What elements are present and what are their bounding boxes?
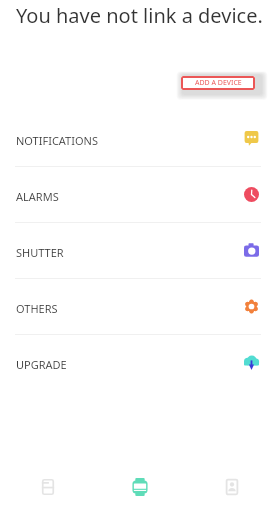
button[interactable]: OTHERS <box>0 280 276 336</box>
staticText: NOTIFICATIONS <box>16 133 98 148</box>
button[interactable]: Records <box>2 463 94 511</box>
staticText: UPGRADE <box>16 357 67 372</box>
button[interactable]: UPGRADE <box>0 336 276 392</box>
button[interactable]: ADD A DEVICE <box>181 76 255 90</box>
button[interactable]: SHUTTER <box>0 224 276 280</box>
button[interactable]: Device <box>94 463 186 511</box>
staticText: OTHERS <box>16 301 58 316</box>
button[interactable]: Profile <box>186 463 276 511</box>
staticText: ALARMS <box>16 189 59 204</box>
staticText: SHUTTER <box>16 245 64 260</box>
staticText: ADD A DEVICE <box>195 78 242 88</box>
button[interactable]: NOTIFICATIONS <box>0 112 276 168</box>
staticText: You have not link a device. <box>16 2 263 29</box>
button[interactable]: ALARMS <box>0 168 276 224</box>
